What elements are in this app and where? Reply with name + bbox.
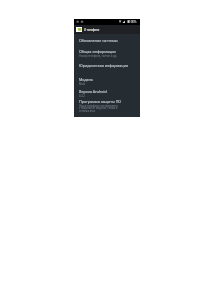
- staticText: О телефоне: [84, 28, 100, 32]
- staticText: Версия Android: [79, 89, 107, 94]
- other: About phone: [76, 27, 82, 32]
- staticText: Юридическая информация: [79, 63, 129, 68]
- staticText: 4.4.2: [79, 94, 139, 98]
- button[interactable]: Модель: [74, 77, 140, 87]
- staticText: Программа защиты ПО: [79, 99, 122, 104]
- staticText: 100%: [129, 20, 137, 24]
- staticText: Модель: [79, 77, 93, 82]
- staticText: Общая информация: [79, 49, 116, 54]
- button[interactable]: Общая информация: [74, 49, 140, 59]
- staticText: Обновление системы: [79, 38, 118, 43]
- button[interactable]: Обновление системы: [74, 38, 140, 46]
- staticText: Наши телефоны поставляются с защитой от …: [79, 104, 119, 113]
- staticText: Mobi: [79, 82, 139, 86]
- button[interactable]: About phone: [74, 25, 140, 34]
- button[interactable]: Версия Android: [74, 89, 140, 99]
- staticText: Номер телефона, сигнал и др.: [79, 54, 139, 58]
- button[interactable]: Программа защиты ПО: [74, 99, 140, 116]
- button[interactable]: Юридическая информация: [74, 63, 140, 71]
